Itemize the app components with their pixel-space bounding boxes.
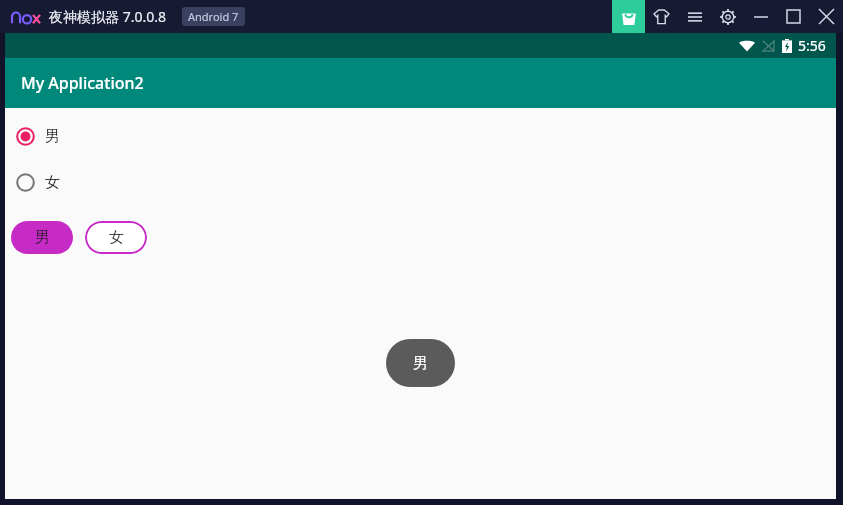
button[interactable]: 男 bbox=[11, 221, 73, 254]
button[interactable]: Close bbox=[810, 0, 843, 33]
button[interactable]: Shirt bbox=[645, 0, 678, 33]
button[interactable]: App store bbox=[612, 0, 645, 33]
button[interactable]: 男 bbox=[5, 122, 836, 150]
button[interactable]: Settings bbox=[711, 0, 744, 33]
staticText: Android 7 bbox=[188, 9, 239, 24]
button[interactable]: 女 bbox=[85, 221, 147, 254]
staticText: 女 bbox=[45, 173, 60, 192]
staticText: 夜神模拟器 7.0.0.8 bbox=[49, 7, 166, 26]
button[interactable]: Menu bbox=[678, 0, 711, 33]
button[interactable]: 女 bbox=[5, 168, 836, 196]
staticText: 女 bbox=[109, 228, 124, 247]
button[interactable]: Minimize bbox=[744, 0, 777, 33]
button[interactable]: 男 bbox=[386, 339, 455, 387]
staticText: 男 bbox=[35, 228, 50, 247]
button[interactable]: Maximize bbox=[777, 0, 810, 33]
staticText: 5:56 bbox=[798, 36, 826, 55]
staticText: 男 bbox=[45, 127, 60, 146]
staticText: 男 bbox=[413, 354, 428, 373]
staticText: My Application2 bbox=[21, 72, 144, 94]
